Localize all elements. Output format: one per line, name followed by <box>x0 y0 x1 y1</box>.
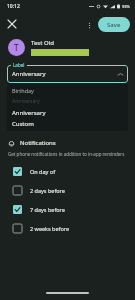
staticText: T <box>14 42 19 53</box>
staticText: Test Old <box>31 39 54 47</box>
button[interactable]: Anniversary <box>7 96 128 107</box>
button[interactable]: 2 days before <box>0 181 135 200</box>
button[interactable]: Anniversary <box>7 107 128 118</box>
staticText: Label <box>13 62 25 68</box>
staticText: 93% <box>122 4 130 9</box>
staticText: Save <box>107 21 121 29</box>
button[interactable]: T <box>8 39 127 56</box>
button[interactable]: 2 weeks before <box>0 219 135 238</box>
button[interactable]: Close <box>4 16 20 32</box>
staticText: Birthday <box>12 87 34 94</box>
staticText: Anniversary <box>12 98 40 105</box>
staticText: 10:12 <box>7 3 20 10</box>
button[interactable]: Birthday <box>7 85 128 96</box>
staticText: 2 days before <box>30 187 65 194</box>
button[interactable]: Save <box>98 17 130 32</box>
staticText: Custom <box>12 120 34 128</box>
button[interactable]: More options <box>83 19 95 31</box>
staticText: Notifications <box>20 139 56 147</box>
staticText: 2 weeks before <box>30 225 70 232</box>
staticText: On day of <box>30 168 56 175</box>
staticText: Anniversary <box>12 109 46 117</box>
staticText: Anniversary <box>12 70 46 78</box>
button[interactable]: Custom <box>7 118 128 129</box>
staticText: 7 days before <box>30 206 65 213</box>
button[interactable]: Anniversary <box>7 65 128 83</box>
button[interactable]: 7 days before <box>0 200 135 219</box>
button[interactable]: On day of <box>0 162 135 181</box>
staticText: Get phone notifications in addition to i… <box>8 151 125 157</box>
